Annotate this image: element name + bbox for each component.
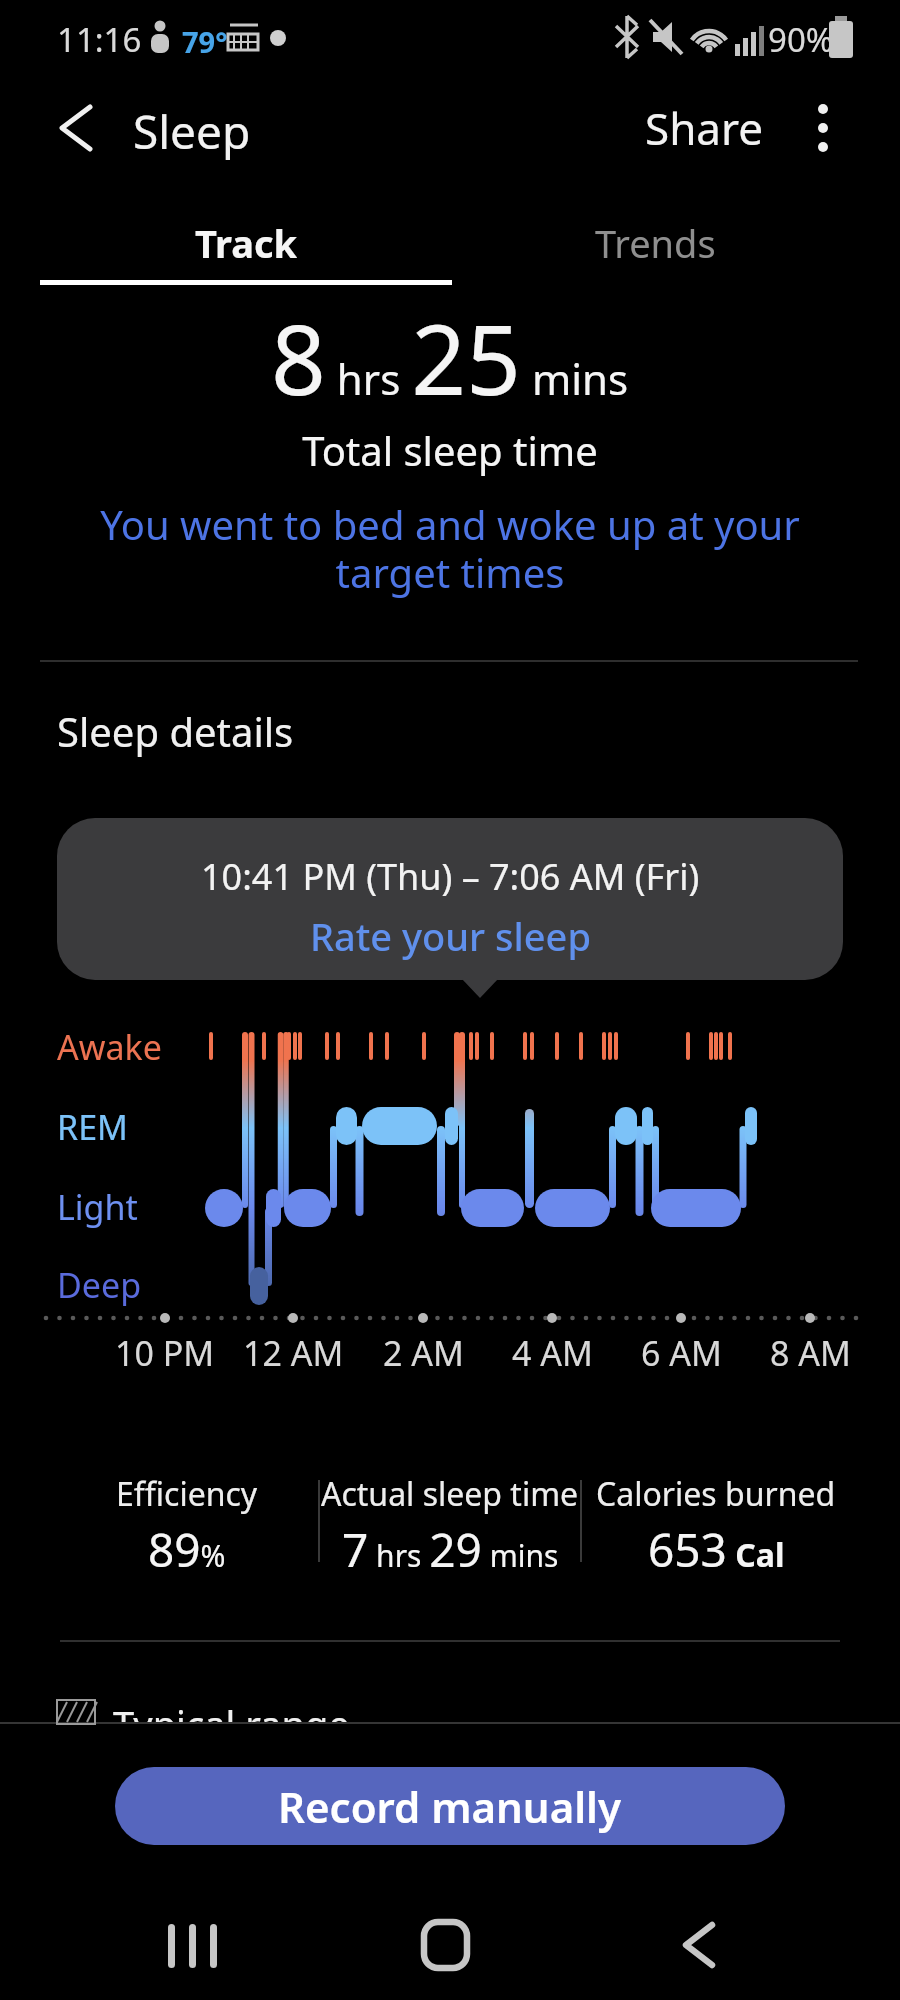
staticText: Deep bbox=[57, 1262, 142, 1308]
staticText: Light bbox=[57, 1184, 138, 1230]
staticText: 8 hrs 25 mins bbox=[271, 292, 629, 423]
staticText: 90% bbox=[768, 17, 834, 62]
staticText: 7 hrs 29 mins bbox=[342, 1518, 559, 1581]
staticText: Actual sleep time bbox=[321, 1472, 579, 1516]
button[interactable]: Record manually bbox=[115, 1767, 785, 1845]
staticText: Track bbox=[195, 217, 298, 269]
staticText: Sleep details bbox=[57, 704, 294, 758]
staticText: 12 AM bbox=[243, 1330, 344, 1376]
staticText: 2 AM bbox=[383, 1330, 464, 1376]
button[interactable] bbox=[150, 1910, 240, 1980]
staticText: 10 PM bbox=[115, 1330, 215, 1376]
staticText: 10:41 PM (Thu) – 7:06 AM (Fri) bbox=[201, 852, 700, 901]
staticText: 11:16 bbox=[57, 17, 142, 62]
button[interactable]: Trends bbox=[452, 200, 858, 286]
staticText: Share bbox=[645, 98, 764, 158]
button[interactable]: Track bbox=[40, 200, 452, 286]
staticText: Typical range bbox=[113, 1698, 350, 1722]
button[interactable] bbox=[405, 1910, 495, 1980]
staticText: Record manually bbox=[278, 1778, 622, 1835]
button[interactable] bbox=[660, 1910, 750, 1980]
staticText: You went to bed and woke up at your targ… bbox=[100, 497, 800, 599]
button[interactable]: 10:41 PM (Thu) – 7:06 AM (Fri) bbox=[57, 818, 843, 980]
staticText: Trends bbox=[595, 217, 716, 269]
staticText: 6 AM bbox=[641, 1330, 722, 1376]
button[interactable] bbox=[40, 95, 110, 161]
staticText: Total sleep time bbox=[302, 423, 598, 477]
staticText: 8 AM bbox=[770, 1330, 851, 1376]
staticText: Efficiency bbox=[116, 1472, 258, 1516]
staticText: 4 AM bbox=[512, 1330, 593, 1376]
button[interactable]: Share bbox=[630, 98, 780, 158]
staticText: 89% bbox=[148, 1518, 226, 1581]
staticText: Calories burned bbox=[596, 1472, 836, 1516]
staticText: 653 Cal bbox=[648, 1518, 785, 1581]
staticText: Rate your sleep bbox=[310, 910, 591, 962]
staticText: Awake bbox=[57, 1024, 162, 1070]
staticText: REM bbox=[57, 1104, 128, 1150]
staticText: Sleep bbox=[133, 100, 251, 163]
staticText: 79° bbox=[182, 22, 228, 61]
button[interactable] bbox=[795, 95, 855, 161]
